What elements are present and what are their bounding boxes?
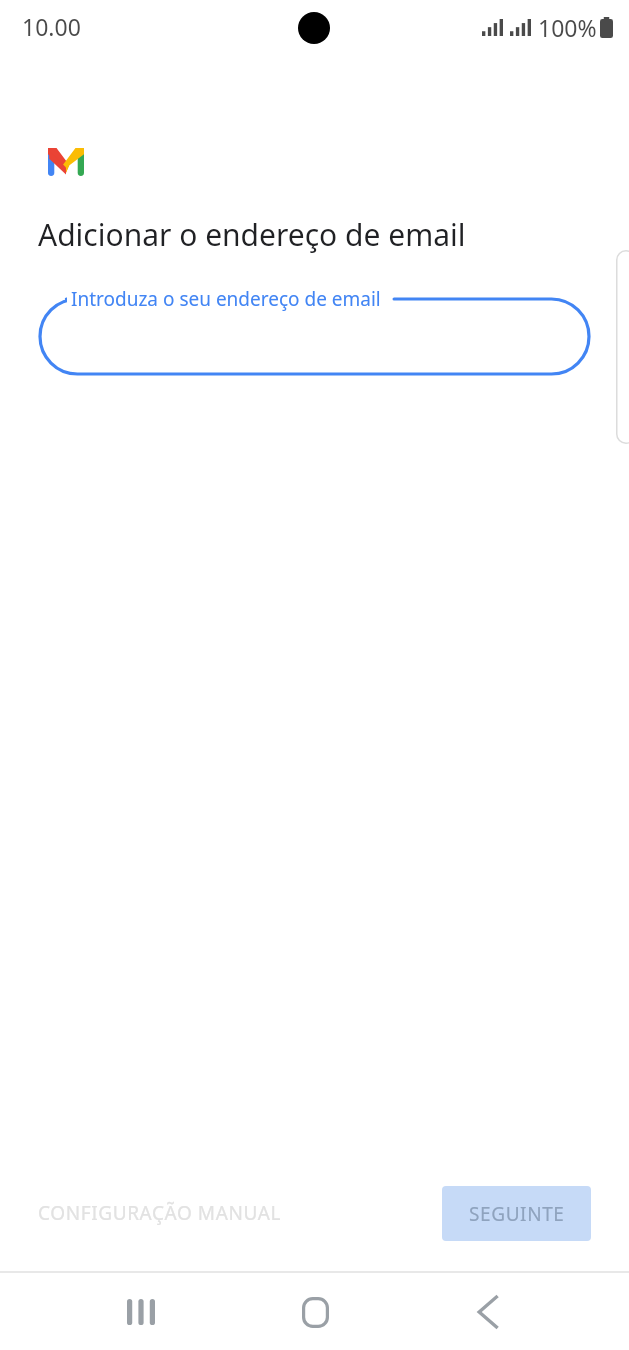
button[interactable]: Home [279,1276,351,1348]
button[interactable]: Back [452,1276,524,1348]
staticText: Introduza o seu endereço de email [71,286,381,312]
button[interactable]: Recents [105,1276,177,1348]
button[interactable]: Introduza o seu endereço de email [40,277,589,377]
button[interactable]: CONFIGURAÇÃO MANUAL [22,1188,298,1238]
staticText: SEGUINTE [469,1201,565,1227]
staticText: Adicionar o endereço de email [38,214,466,255]
staticText: CONFIGURAÇÃO MANUAL [38,1200,282,1226]
button[interactable]: SEGUINTE [442,1186,591,1241]
staticText: 100% [538,12,597,43]
staticText: 10.00 [22,11,81,42]
